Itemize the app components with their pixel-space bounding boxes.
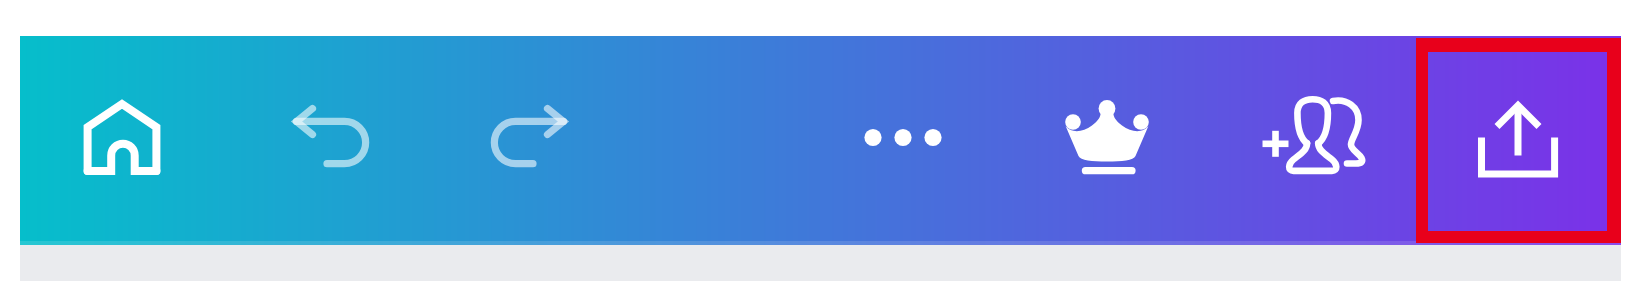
button[interactable]: Home <box>67 80 177 190</box>
button[interactable]: More options <box>848 80 958 190</box>
button[interactable]: Add collaborators <box>1259 80 1369 190</box>
button[interactable]: Premium <box>1052 80 1162 190</box>
button[interactable]: Undo <box>276 80 386 190</box>
button[interactable]: Redo <box>474 80 584 190</box>
button[interactable]: Share <box>1428 52 1607 231</box>
